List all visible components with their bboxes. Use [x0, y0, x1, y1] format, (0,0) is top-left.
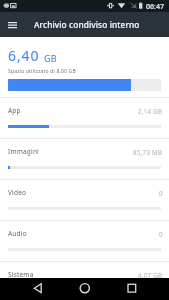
- staticText: Video: [8, 188, 27, 197]
- button[interactable]: [0, 139, 169, 179]
- staticText: 4,07 GB: [138, 271, 163, 279]
- staticText: Audio: [8, 229, 27, 238]
- staticText: 6,40: [8, 46, 40, 65]
- staticText: 0: [159, 189, 163, 197]
- button[interactable]: [0, 98, 169, 138]
- button[interactable]: [0, 262, 169, 300]
- staticText: Sistema: [8, 270, 34, 279]
- button[interactable]: Menu: [0, 12, 25, 37]
- staticText: Immagini: [8, 147, 39, 156]
- button[interactable]: Home: [72, 278, 98, 300]
- staticText: 2,14 GB: [138, 107, 163, 115]
- button[interactable]: Back: [25, 278, 51, 300]
- button[interactable]: [0, 180, 169, 220]
- button[interactable]: [0, 221, 169, 261]
- staticText: 85,73 MB: [133, 148, 163, 156]
- staticText: 06:47: [146, 2, 164, 12]
- staticText: Archivio condiviso interno: [34, 19, 140, 30]
- staticText: App: [8, 106, 21, 115]
- button[interactable]: Recent apps: [119, 278, 145, 300]
- staticText: GB: [44, 52, 58, 64]
- staticText: Spazio utilizzato di 8,00 GB: [8, 68, 76, 75]
- staticText: 0: [159, 230, 163, 238]
